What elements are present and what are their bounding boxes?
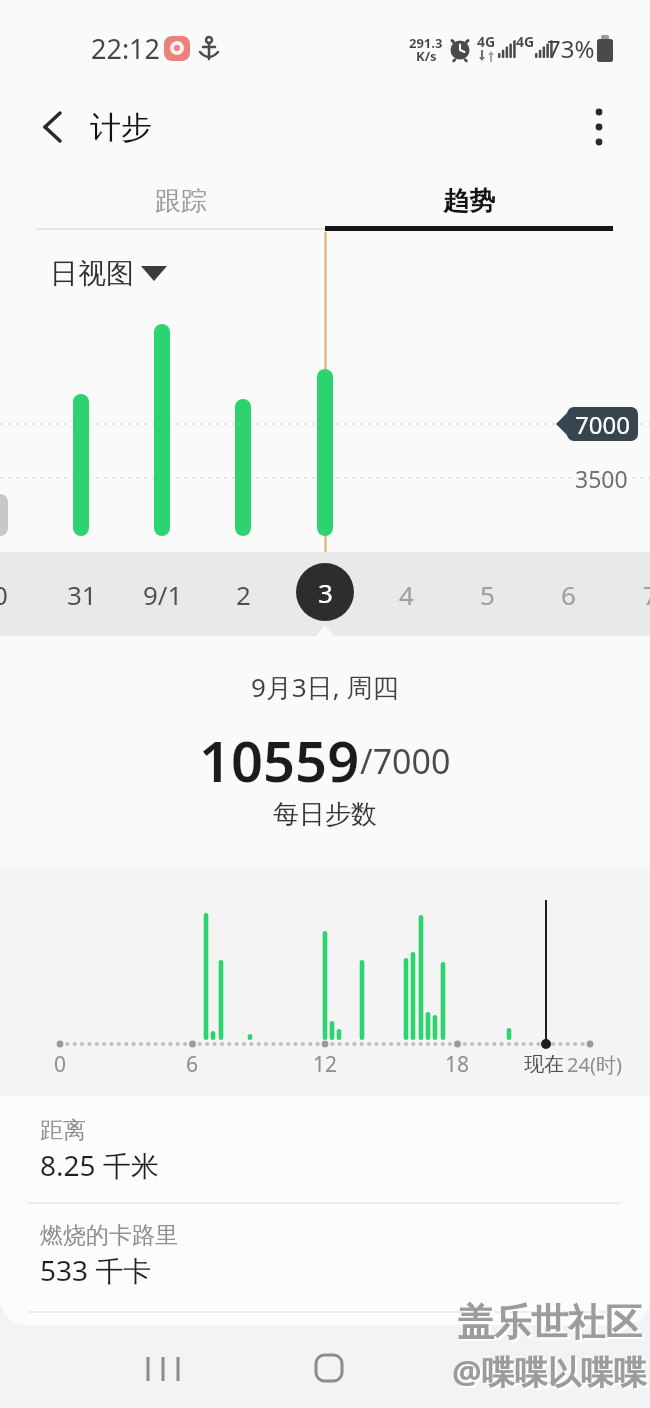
staticText: 距离 [40, 1116, 86, 1145]
staticText: 31 [67, 577, 97, 612]
staticText: 73% [547, 32, 595, 65]
staticText: 趋势 [443, 185, 495, 218]
staticText: 现在 [524, 1052, 564, 1077]
staticText: 9月3日, 周四 [251, 669, 399, 705]
staticText: 日视图 [50, 256, 134, 291]
staticText: 18 [445, 1050, 470, 1079]
staticText: /7000 [360, 738, 451, 784]
staticText: 4G [516, 32, 535, 51]
staticText: 6 [561, 577, 576, 612]
staticText: @喋喋以喋喋 [454, 1351, 649, 1396]
staticText: @喋喋以喋喋 [452, 1349, 647, 1394]
staticText: 533 千卡 [40, 1251, 152, 1289]
staticText: 4 [399, 577, 414, 612]
staticText: 7 [643, 577, 650, 612]
button[interactable]: 跟踪 [36, 171, 325, 232]
button[interactable]: 日视图 [40, 250, 180, 296]
staticText: 10559 [199, 722, 360, 788]
button[interactable]: 7 [610, 552, 650, 636]
button[interactable]: 31 [41, 552, 122, 636]
button[interactable] [30, 103, 78, 151]
staticText: 7000 [575, 408, 630, 441]
staticText: 22:12 [91, 30, 161, 67]
staticText: 8.25 千米 [40, 1146, 159, 1184]
staticText: 燃烧的卡路里 [40, 1221, 178, 1250]
staticText: 3 [318, 575, 333, 610]
staticText: 0 [0, 577, 8, 612]
button[interactable]: 5 [447, 552, 528, 636]
staticText: 24(时) [567, 1051, 622, 1078]
staticText: 3500 [575, 463, 628, 494]
staticText: 12 [313, 1050, 338, 1079]
staticText: 9/1 [143, 577, 183, 612]
button[interactable]: 趋势 [325, 171, 613, 232]
button[interactable] [300, 1340, 360, 1400]
button[interactable] [577, 103, 621, 151]
button[interactable]: 3 [296, 563, 354, 621]
button[interactable]: 9/1 [122, 552, 203, 636]
staticText: 盖乐世社区 [459, 1301, 644, 1348]
staticText: 2 [236, 577, 251, 612]
staticText: 0 [54, 1050, 67, 1079]
button[interactable]: 4 [366, 552, 447, 636]
staticText: 计步 [90, 108, 152, 147]
staticText: 6 [186, 1050, 199, 1079]
staticText: 每日步数 [273, 798, 377, 831]
staticText: 5 [480, 577, 495, 612]
button[interactable]: 0 [0, 552, 41, 636]
button[interactable]: 2 [203, 552, 284, 636]
staticText: 盖乐世社区 [457, 1299, 642, 1346]
staticText: K/s [416, 47, 437, 65]
staticText: 跟踪 [155, 185, 207, 218]
staticText: 4G [477, 32, 496, 51]
button[interactable] [130, 1340, 196, 1400]
staticText: 291.3 [409, 34, 443, 52]
button[interactable]: 6 [528, 552, 609, 636]
